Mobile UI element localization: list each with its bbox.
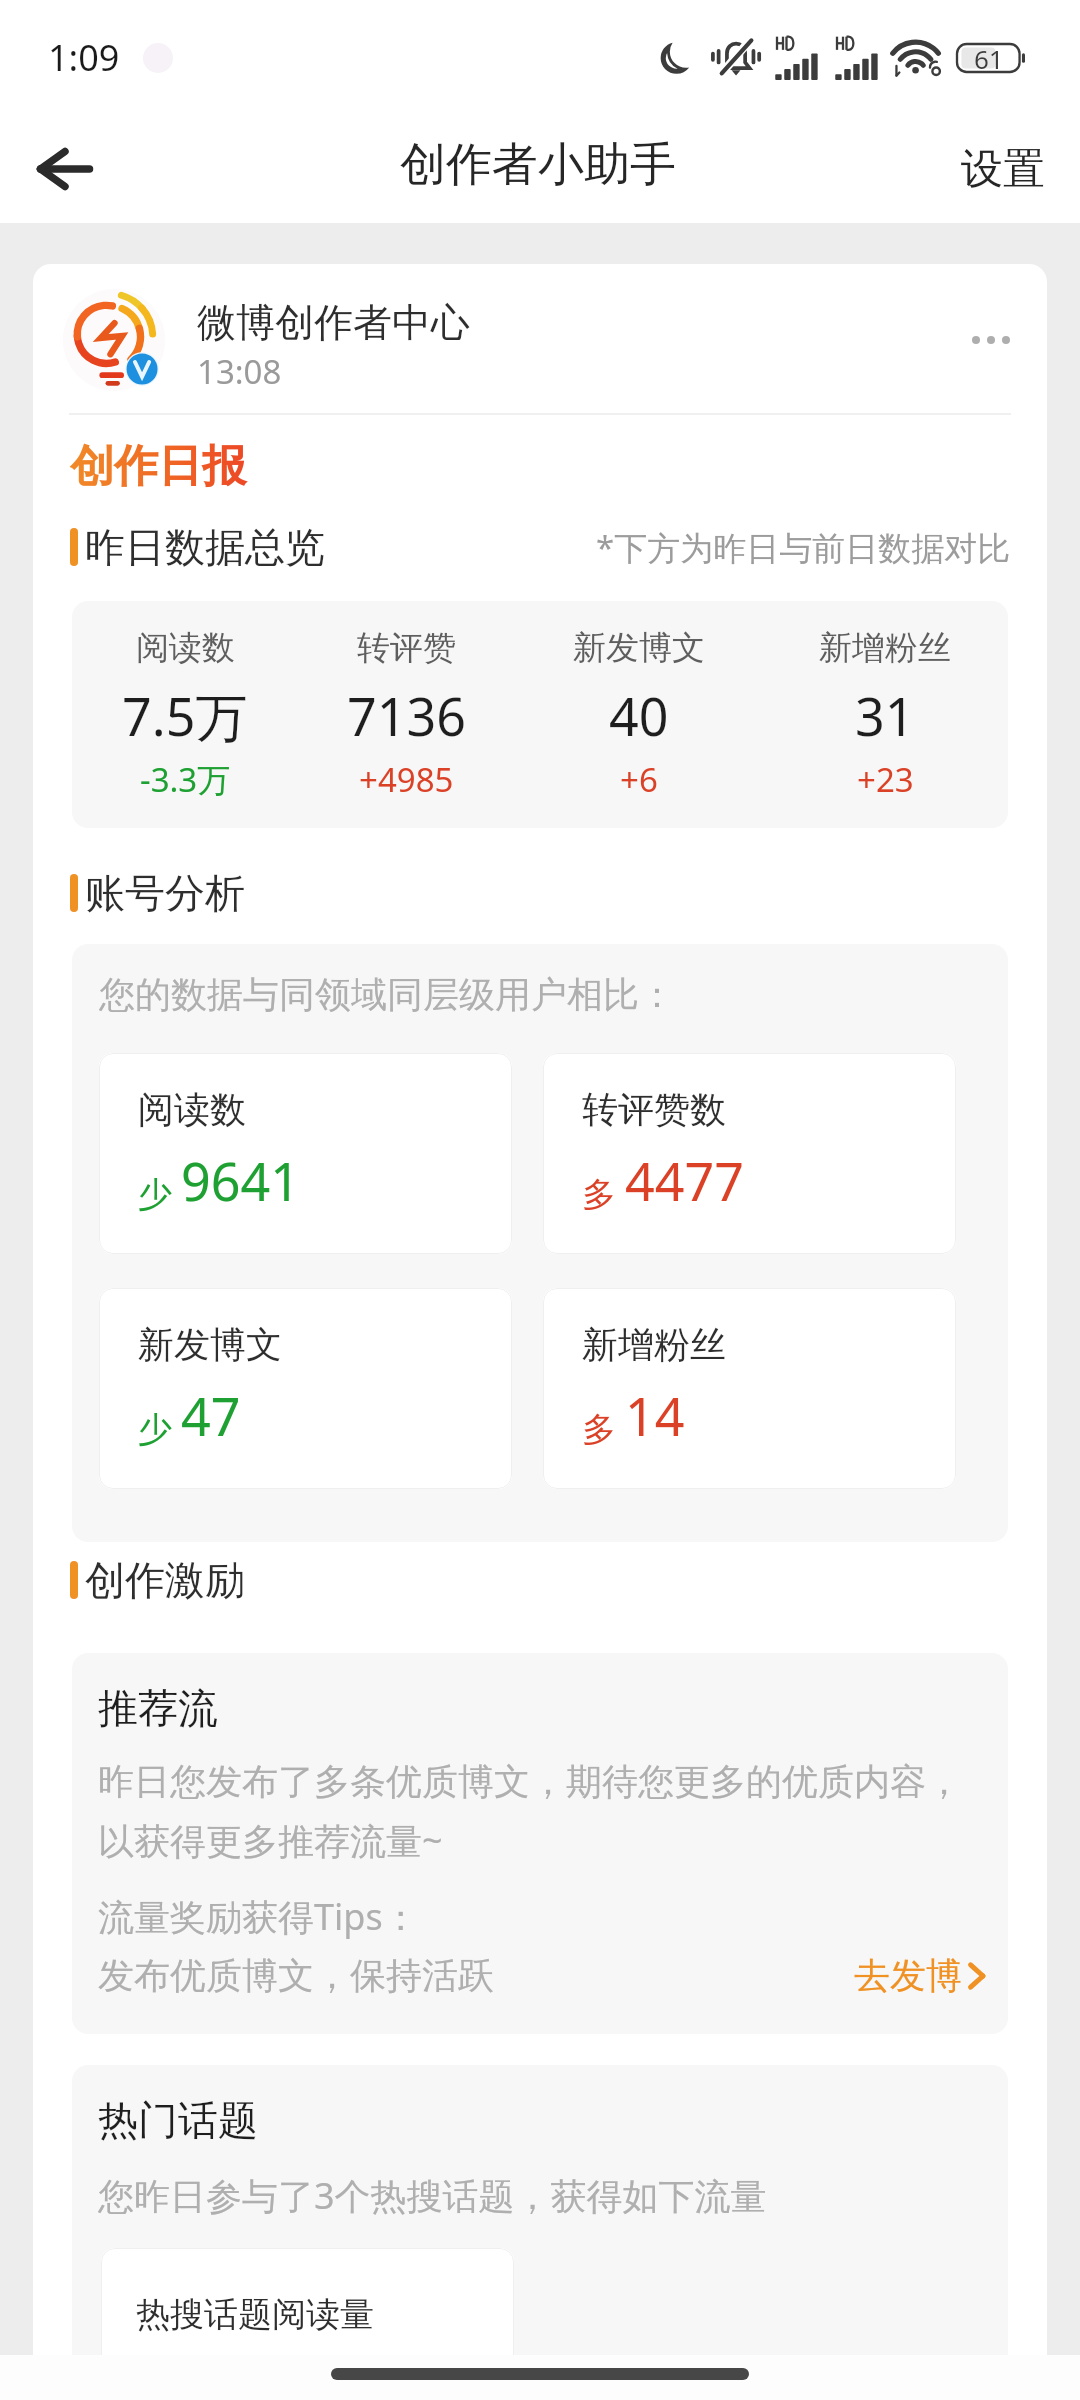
staticText: 昨日您发布了多条优质博文，期待您更多的优质内容，以获得更多推荐流量~ (98, 1759, 989, 1864)
staticText: 您昨日参与了3个热搜话题，获得如下流量 (98, 2171, 767, 2220)
staticText: 7.5万 (122, 680, 248, 751)
staticText: 9641 (181, 1145, 300, 1216)
staticText: 转评赞 (357, 627, 456, 669)
staticText: +4985 (359, 757, 454, 802)
staticText: 14 (625, 1380, 685, 1451)
staticText: 少 (138, 1173, 172, 1216)
staticText: 少 (138, 1408, 172, 1451)
button[interactable]: 阅读数 (99, 1053, 512, 1254)
staticText: 创作者小助手 (400, 136, 676, 194)
staticText: 发布优质博文，保持活跃 (98, 1953, 494, 1998)
button[interactable]: 返回 (20, 124, 110, 214)
staticText: 4477 (625, 1145, 744, 1216)
staticText: 1:09 (48, 33, 120, 82)
staticText: 多 (582, 1408, 616, 1451)
staticText: 61 (974, 41, 1004, 76)
button[interactable]: 新增粉丝 (543, 1288, 956, 1489)
staticText: 设置 (961, 143, 1045, 196)
staticText: 新增粉丝 (819, 627, 951, 669)
staticText: 您的数据与同领域同层级用户相比： (99, 972, 675, 1017)
staticText: 微博创作者中心 (197, 298, 470, 347)
staticText: 7136 (347, 680, 466, 751)
staticText: 新发博文 (138, 1322, 282, 1367)
staticText: 阅读数 (138, 1087, 246, 1132)
staticText: 13:08 (197, 349, 282, 394)
staticText: -3.3万 (140, 757, 231, 802)
staticText: 热搜话题阅读量 (136, 2293, 374, 2336)
staticText: 新发博文 (573, 627, 705, 669)
staticText: +23 (857, 757, 914, 802)
staticText: 阅读数 (136, 627, 235, 669)
button[interactable]: 更多 (959, 308, 1023, 372)
staticText: 40 (609, 680, 669, 751)
staticText: 流量奖励获得Tips： (98, 1892, 419, 1941)
staticText: 47 (181, 1380, 241, 1451)
staticText: 创作激励 (85, 1555, 245, 1605)
staticText: 新增粉丝 (582, 1322, 726, 1367)
staticText: 去发博 (854, 1953, 962, 1998)
staticText: 账号分析 (85, 868, 245, 918)
button[interactable]: 设置 (951, 131, 1055, 208)
staticText: 推荐流 (98, 1683, 218, 1733)
staticText: +6 (620, 757, 658, 802)
staticText: 创作日报 (70, 439, 246, 494)
staticText: 转评赞数 (582, 1087, 726, 1132)
button[interactable]: 新发博文 (99, 1288, 512, 1489)
button[interactable]: 转评赞数 (543, 1053, 956, 1254)
button[interactable]: 去发博 (850, 1949, 989, 2002)
staticText: 31 (855, 680, 915, 751)
staticText: 多 (582, 1173, 616, 1216)
staticText: 昨日数据总览 (85, 522, 325, 572)
staticText: *下方为昨日与前日数据对比 (596, 525, 1011, 570)
staticText: 热门话题 (98, 2095, 258, 2145)
